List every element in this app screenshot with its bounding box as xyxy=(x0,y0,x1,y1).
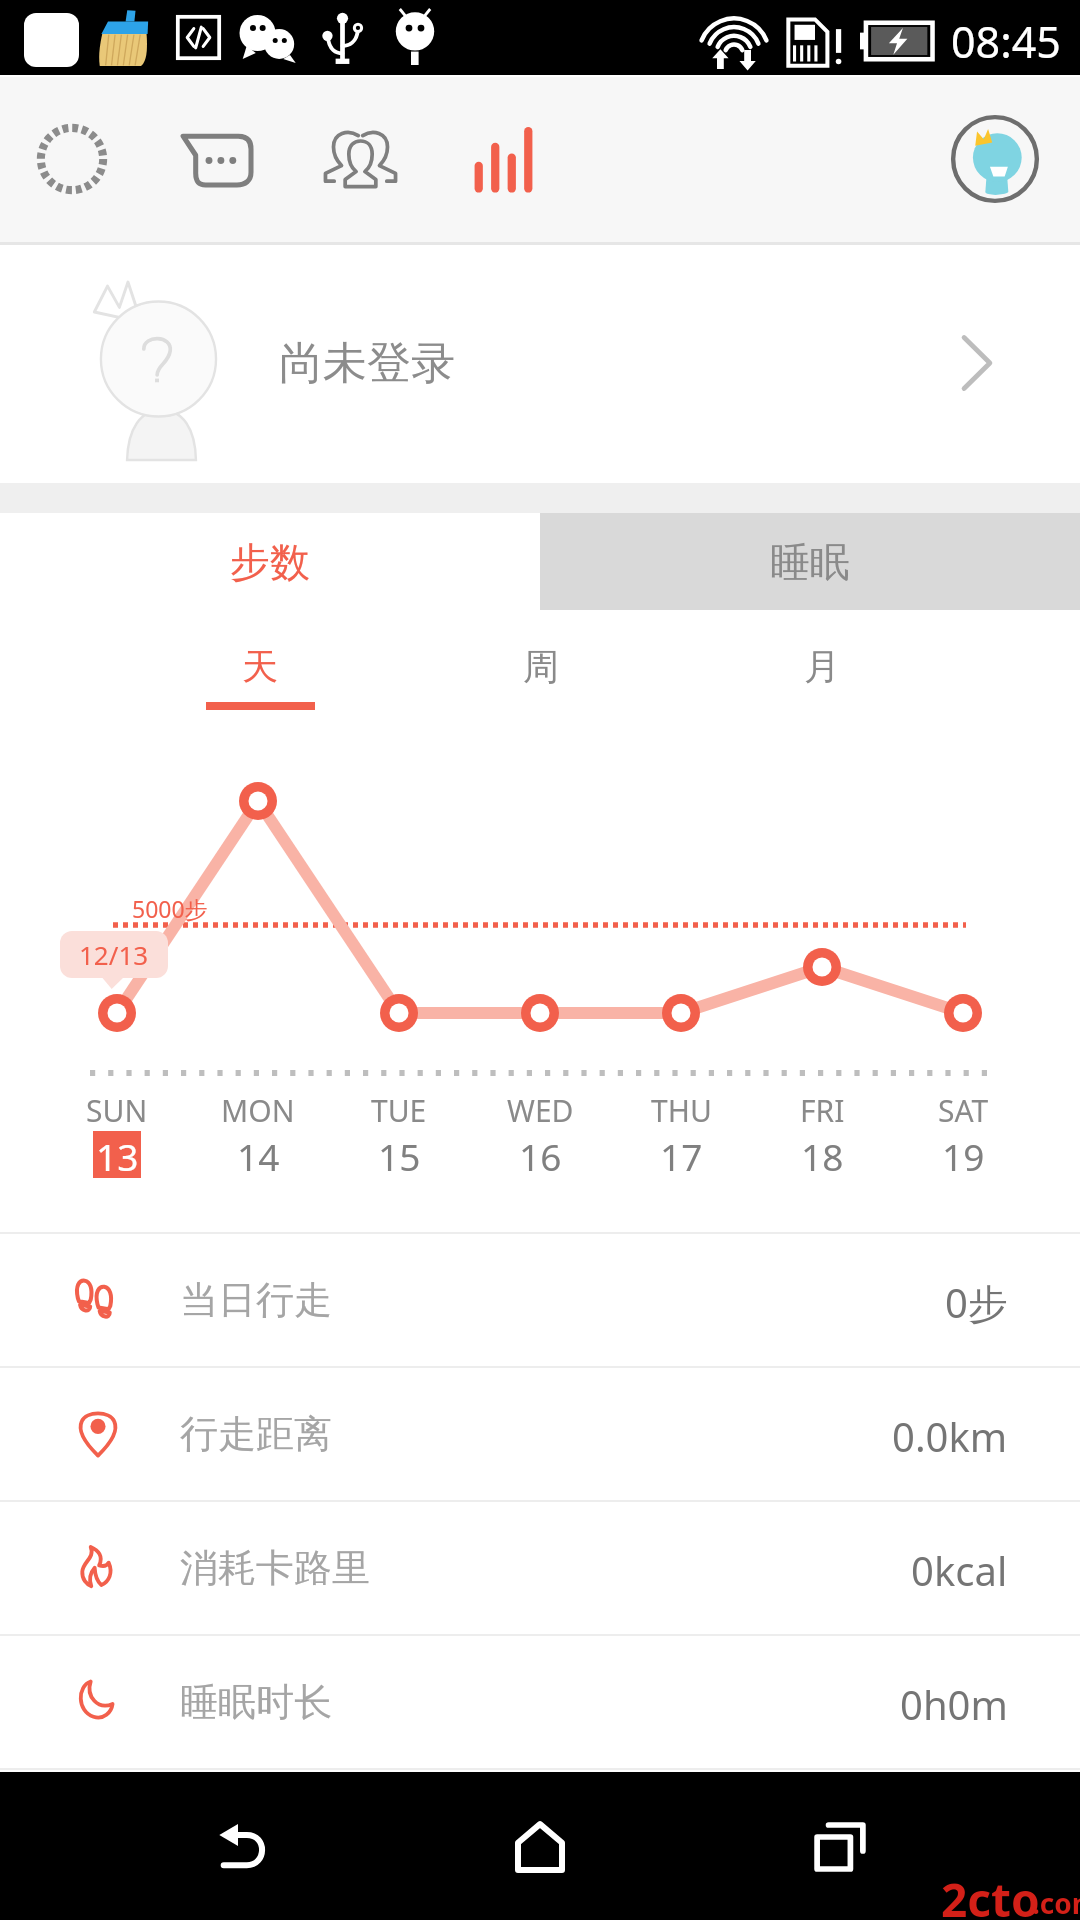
staticText: 08:45 xyxy=(951,12,1061,71)
button[interactable]: 步数 xyxy=(0,513,540,610)
staticText: 步数 xyxy=(230,537,310,587)
staticText: FRI xyxy=(800,1090,845,1130)
staticText: MON xyxy=(221,1090,295,1130)
button[interactable]: Recents xyxy=(780,1787,900,1907)
button[interactable]: 当日行走 xyxy=(0,1234,1080,1366)
button[interactable]: 行走距离 xyxy=(0,1368,1080,1500)
staticText: 15 xyxy=(378,1131,421,1178)
button[interactable]: Activity xyxy=(22,109,122,209)
staticText: 睡眠时长 xyxy=(180,1678,332,1726)
staticText: 0步 xyxy=(945,1275,1008,1330)
button[interactable]: 月 xyxy=(752,614,892,724)
button[interactable]: Statistics xyxy=(453,109,553,209)
button[interactable]: Friends xyxy=(310,109,410,209)
button[interactable]: Back xyxy=(183,1787,303,1907)
staticText: 消耗卡路里 xyxy=(180,1544,370,1592)
button[interactable]: Messages xyxy=(166,109,266,209)
staticText: WED xyxy=(507,1090,574,1130)
staticText: 12/13 xyxy=(79,937,149,972)
button[interactable]: 消耗卡路里 xyxy=(0,1502,1080,1634)
button[interactable]: Profile xyxy=(942,106,1048,212)
staticText: 19 xyxy=(942,1131,985,1178)
staticText: 行走距离 xyxy=(180,1410,332,1458)
button[interactable]: 睡眠 xyxy=(540,513,1080,610)
staticText: 尚未登录 xyxy=(279,336,455,391)
staticText: 天 xyxy=(242,644,278,689)
staticText: 14 xyxy=(237,1131,280,1178)
staticText: TUE xyxy=(371,1090,427,1130)
staticText: .com xyxy=(1032,1884,1080,1920)
staticText: SUN xyxy=(86,1090,148,1130)
staticText: 0kcal xyxy=(911,1543,1008,1597)
staticText: THU xyxy=(651,1090,712,1130)
staticText: 周 xyxy=(523,644,559,689)
staticText: 13 xyxy=(96,1131,139,1178)
staticText: SAT xyxy=(938,1090,989,1130)
staticText: 睡眠 xyxy=(770,537,850,587)
button[interactable]: 天 xyxy=(190,614,330,724)
button[interactable]: Home xyxy=(480,1787,600,1907)
button[interactable]: 周 xyxy=(471,614,611,724)
staticText: 18 xyxy=(801,1131,844,1178)
button[interactable]: 睡眠时长 xyxy=(0,1636,1080,1768)
staticText: 17 xyxy=(660,1131,703,1178)
staticText: 0.0km xyxy=(892,1409,1008,1463)
staticText: 0h0m xyxy=(900,1677,1008,1731)
staticText: 2cto xyxy=(941,1868,1040,1920)
staticText: 16 xyxy=(519,1131,562,1178)
staticText: 5000步 xyxy=(132,893,208,924)
staticText: 月 xyxy=(804,644,840,689)
button[interactable]: 尚未登录 xyxy=(0,243,1080,483)
staticText: 当日行走 xyxy=(180,1276,332,1324)
